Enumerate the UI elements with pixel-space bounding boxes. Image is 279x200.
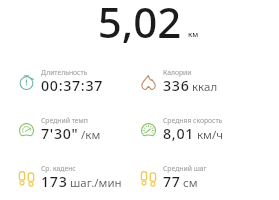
staticText: Длительность [41,68,88,77]
staticText: Ср. каденс [41,164,76,173]
other: Calories [141,75,156,90]
staticText: см [183,175,198,191]
other: Duration [19,75,34,90]
button[interactable]: Steps [19,161,137,187]
staticText: 8,01 [163,124,195,143]
staticText: 5,02 [0,0,279,50]
staticText: км [188,29,199,39]
other: Average pace [19,123,34,138]
staticText: Средний темп [41,116,88,125]
button[interactable]: Duration [19,65,137,91]
staticText: 00:37:37 [41,76,104,95]
other: Steps [19,171,34,186]
other: Average speed [141,123,156,138]
staticText: км/ч [197,127,223,143]
button[interactable]: Steps [141,161,259,187]
staticText: 336 [163,76,190,95]
staticText: 77 [163,172,181,191]
staticText: ккал [192,79,218,95]
staticText: Калории [163,68,192,77]
staticText: 173 [41,172,68,191]
staticText: 7'30" [41,124,79,143]
button[interactable]: Calories [141,65,259,91]
staticText: шаг./мин [70,175,122,191]
staticText: Средний шаг [163,164,207,173]
button[interactable]: Average speed [141,113,259,139]
staticText: /км [81,127,101,143]
other: Steps [141,171,156,186]
staticText: Средняя скорость [163,116,223,125]
button[interactable]: Average pace [19,113,137,139]
